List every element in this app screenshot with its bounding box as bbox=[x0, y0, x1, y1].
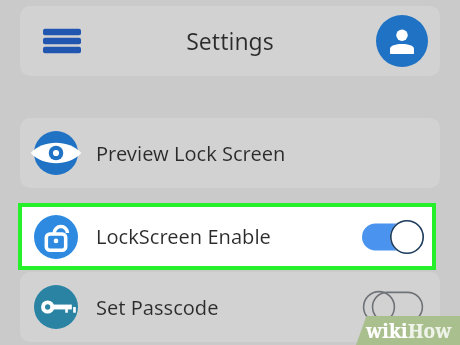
button[interactable]: Profile bbox=[376, 15, 428, 67]
button[interactable]: Set Passcode bbox=[20, 272, 440, 342]
staticText: Set Passcode bbox=[96, 294, 219, 321]
button[interactable]: Menu bbox=[40, 22, 84, 60]
staticText: How bbox=[408, 318, 452, 344]
staticText: wiki bbox=[366, 318, 408, 344]
staticText: LockScreen Enable bbox=[96, 223, 271, 250]
button[interactable]: LockScreen Enable bbox=[22, 207, 432, 266]
staticText: Preview Lock Screen bbox=[96, 140, 286, 167]
staticText: Settings bbox=[20, 25, 440, 56]
button[interactable]: Preview Lock Screen bbox=[20, 118, 440, 188]
